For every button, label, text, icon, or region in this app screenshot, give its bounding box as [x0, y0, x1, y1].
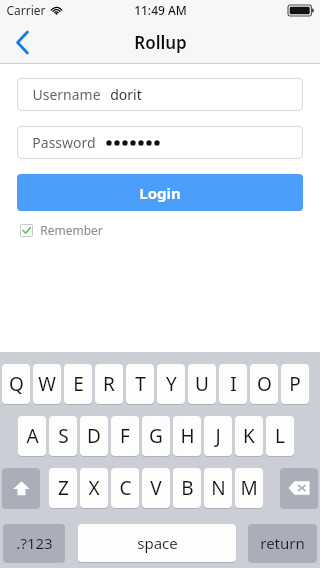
staticText: H	[180, 423, 195, 449]
button[interactable]: C	[111, 468, 139, 508]
staticText: C	[119, 475, 132, 501]
button[interactable]: O	[250, 364, 278, 404]
staticText: U	[195, 371, 209, 397]
button[interactable]: W	[33, 364, 61, 404]
button[interactable]: Login	[17, 174, 303, 211]
button[interactable]: A	[18, 416, 46, 456]
button[interactable]: K	[235, 416, 263, 456]
button[interactable]: X	[80, 468, 108, 508]
button[interactable]: I	[219, 364, 247, 404]
staticText: 11:49 AM	[134, 2, 187, 18]
staticText: space	[137, 533, 178, 553]
button[interactable]: D	[80, 416, 108, 456]
button[interactable]: B	[173, 468, 201, 508]
button[interactable]: Y	[157, 364, 185, 404]
staticText: P	[289, 371, 301, 397]
button[interactable]: Username	[17, 78, 303, 111]
staticText: Login	[139, 183, 181, 203]
staticText: D	[87, 423, 101, 449]
staticText: A	[26, 423, 39, 449]
staticText: Rollup	[134, 31, 187, 54]
staticText: .?123	[16, 533, 53, 553]
button[interactable]: H	[173, 416, 201, 456]
button[interactable]: Remember	[20, 222, 103, 238]
staticText: V	[150, 475, 162, 501]
button[interactable]: return	[248, 524, 317, 562]
button[interactable]: T	[126, 364, 154, 404]
staticText: I	[230, 371, 237, 397]
button[interactable]: Z	[49, 468, 77, 508]
staticText: F	[120, 423, 130, 449]
button[interactable]: P	[281, 364, 309, 404]
staticText: G	[149, 423, 163, 449]
staticText: Remember	[40, 222, 103, 238]
button[interactable]: N	[204, 468, 232, 508]
staticText: Username	[32, 85, 101, 104]
button[interactable]: .?123	[3, 524, 65, 562]
staticText: Q	[9, 371, 24, 397]
staticText: Y	[166, 371, 177, 397]
staticText: O	[257, 371, 272, 397]
button[interactable]: G	[142, 416, 170, 456]
staticText: dorit	[110, 85, 142, 104]
staticText: E	[73, 371, 84, 397]
staticText: L	[275, 423, 285, 449]
staticText: Z	[58, 475, 69, 501]
button[interactable]: Back	[0, 20, 44, 64]
button[interactable]: S	[49, 416, 77, 456]
button[interactable]: Backspace	[280, 468, 318, 508]
button[interactable]: U	[188, 364, 216, 404]
button[interactable]: Password	[17, 126, 303, 159]
button[interactable]: V	[142, 468, 170, 508]
button[interactable]: R	[95, 364, 123, 404]
staticText: B	[181, 475, 194, 501]
staticText: M	[240, 475, 258, 501]
staticText: J	[215, 423, 221, 449]
button[interactable]: Shift	[2, 468, 40, 508]
staticText: R	[103, 371, 115, 397]
button[interactable]: space	[78, 524, 236, 562]
staticText: K	[243, 423, 255, 449]
button[interactable]: J	[204, 416, 232, 456]
button[interactable]: M	[235, 468, 263, 508]
staticText: Password	[32, 133, 96, 152]
staticText: return	[260, 533, 305, 553]
button[interactable]: E	[64, 364, 92, 404]
staticText: Carrier	[6, 2, 46, 18]
staticText: N	[211, 475, 226, 501]
staticText: W	[38, 371, 56, 397]
button[interactable]: Q	[2, 364, 30, 404]
button[interactable]: F	[111, 416, 139, 456]
staticText: X	[88, 475, 100, 501]
staticText: T	[135, 371, 146, 397]
button[interactable]: L	[266, 416, 294, 456]
staticText: S	[58, 423, 69, 449]
